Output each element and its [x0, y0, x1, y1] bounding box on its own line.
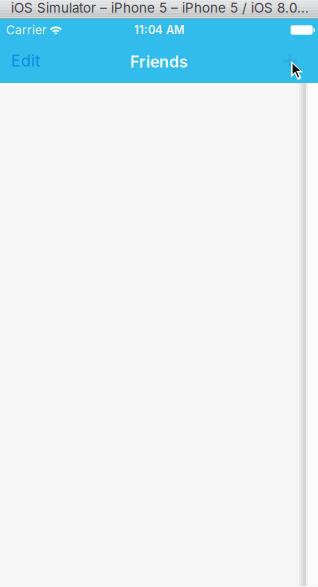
staticText: Friends: [130, 52, 188, 71]
staticText: Carrier: [6, 23, 47, 37]
staticText: Edit: [11, 51, 40, 70]
staticText: 11:04 AM: [134, 23, 184, 37]
button[interactable]: Edit: [0, 39, 50, 83]
staticText: iOS Simulator – iPhone 5 – iPhone 5 / iO…: [11, 0, 309, 16]
button[interactable]: Add: [268, 39, 318, 83]
